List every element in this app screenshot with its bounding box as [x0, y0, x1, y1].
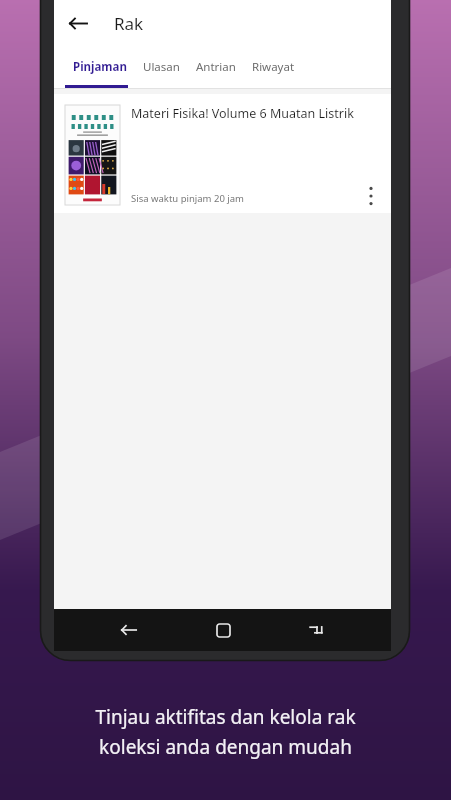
staticText: Pinjaman — [73, 59, 127, 75]
staticText: Riwayat — [252, 59, 295, 75]
button[interactable]: Back — [58, 3, 98, 43]
button[interactable]: Riwayat — [244, 46, 303, 88]
staticText: Materi Fisika! Volume 6 Muatan Listrik — [131, 105, 354, 122]
staticText: Sisa waktu pinjam 20 jam — [131, 192, 244, 205]
staticText: Rak — [114, 12, 144, 35]
button[interactable]: More options — [357, 105, 385, 205]
button[interactable]: Materi Fisika! Volume 6 Muatan Listrik — [54, 94, 391, 213]
staticText: Antrian — [196, 59, 236, 75]
staticText: Tinjau aktifitas dan kelola rak — [95, 704, 356, 730]
button[interactable]: Antrian — [188, 46, 244, 88]
button[interactable]: Back — [110, 611, 148, 649]
button[interactable]: Ulasan — [135, 46, 188, 88]
staticText: koleksi anda dengan mudah — [99, 734, 352, 760]
button[interactable]: Pinjaman — [65, 46, 135, 88]
button[interactable]: Home — [204, 611, 242, 649]
button[interactable]: Recent apps — [297, 611, 335, 649]
staticText: Ulasan — [143, 59, 180, 75]
